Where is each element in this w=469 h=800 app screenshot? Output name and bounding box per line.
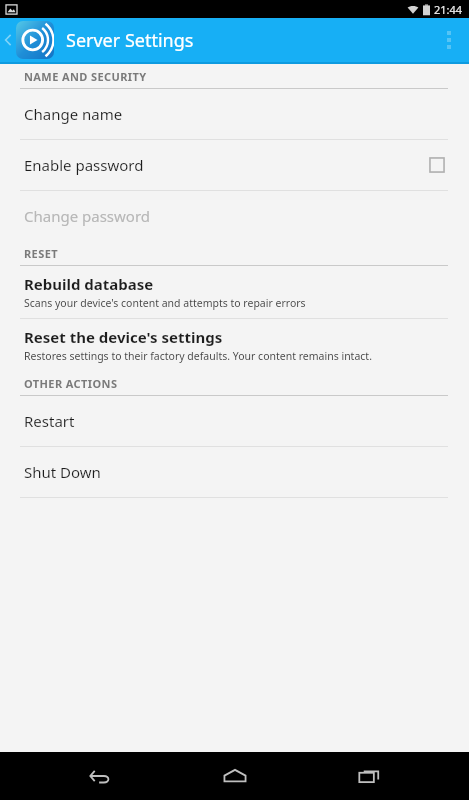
button[interactable]: Home xyxy=(200,752,270,800)
staticText: 21:44 xyxy=(434,2,463,17)
staticText: OTHER ACTIONS xyxy=(24,376,118,391)
staticText: Enable password xyxy=(24,155,144,175)
button[interactable]: Enable password xyxy=(0,140,469,190)
button[interactable]: Shut Down xyxy=(0,447,469,497)
staticText: NAME AND SECURITY xyxy=(24,69,147,84)
staticText: Scans your device's content and attempts… xyxy=(24,296,306,310)
button[interactable]: Restart xyxy=(0,396,469,446)
button[interactable]: Change name xyxy=(0,89,469,139)
button[interactable]: Navigate up xyxy=(0,18,56,62)
button[interactable]: Reset the device's settings xyxy=(0,319,469,371)
staticText: Change password xyxy=(24,206,151,226)
staticText: RESET xyxy=(24,246,58,261)
staticText: Restores settings to their factory defau… xyxy=(24,349,372,363)
button[interactable]: Recent apps xyxy=(334,752,404,800)
staticText: Reset the device's settings xyxy=(24,327,223,347)
button[interactable]: Rebuild database xyxy=(0,266,469,318)
staticText: Server Settings xyxy=(66,28,194,53)
button[interactable]: Back xyxy=(65,752,135,800)
staticText: Restart xyxy=(24,411,75,431)
staticText: Shut Down xyxy=(24,462,101,482)
staticText: Change name xyxy=(24,104,123,124)
button[interactable]: More options xyxy=(429,18,469,62)
button: Change password xyxy=(0,191,469,241)
staticText: Rebuild database xyxy=(24,274,154,294)
